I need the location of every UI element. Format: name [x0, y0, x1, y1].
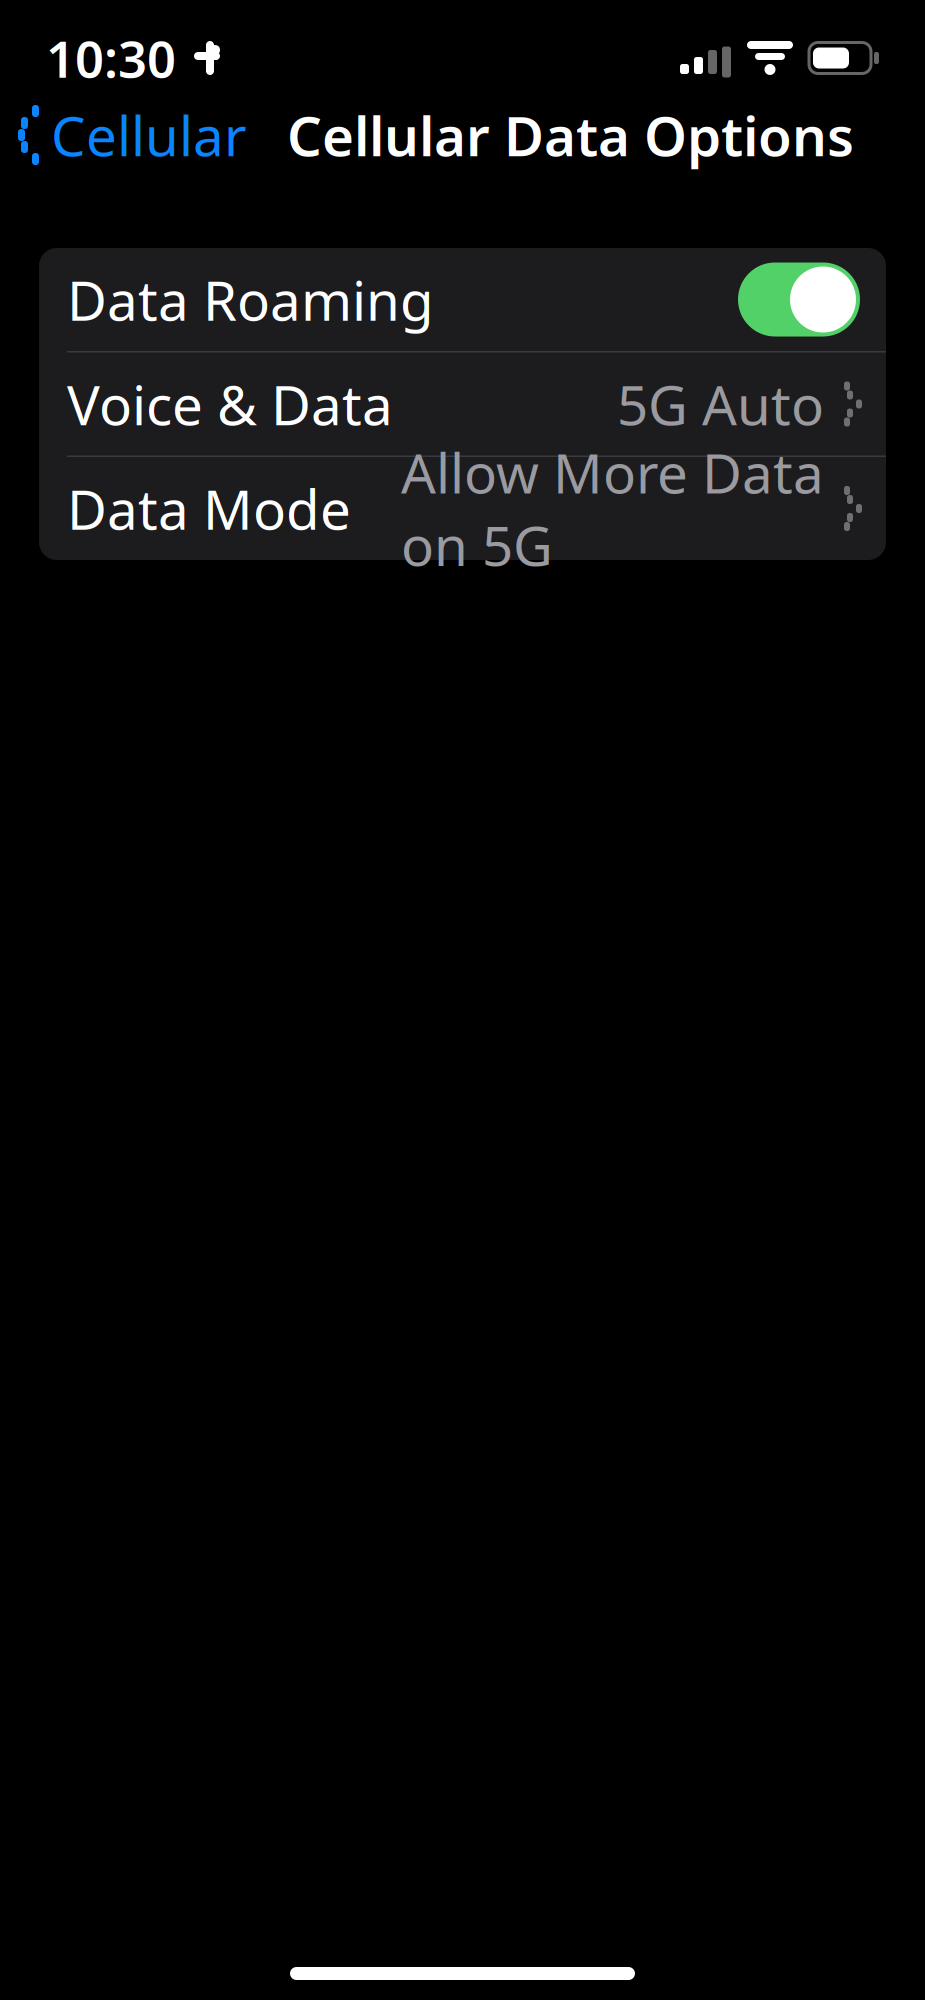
button[interactable]: Cellular: [0, 91, 263, 179]
staticText: Cellular: [51, 99, 247, 171]
staticText: 5G Auto: [617, 368, 824, 440]
staticText: Allow More Data on 5G: [401, 436, 824, 581]
staticText: 10:30: [46, 24, 176, 92]
button[interactable]: Voice & Data: [39, 352, 886, 455]
staticText: Cellular Data Options: [287, 99, 854, 171]
staticText: Voice & Data: [67, 368, 393, 440]
staticText: Data Roaming: [67, 263, 434, 336]
staticText: Data Mode: [67, 472, 351, 545]
button[interactable]: Data Roaming: [39, 248, 886, 351]
button[interactable]: Data Mode: [39, 457, 886, 560]
